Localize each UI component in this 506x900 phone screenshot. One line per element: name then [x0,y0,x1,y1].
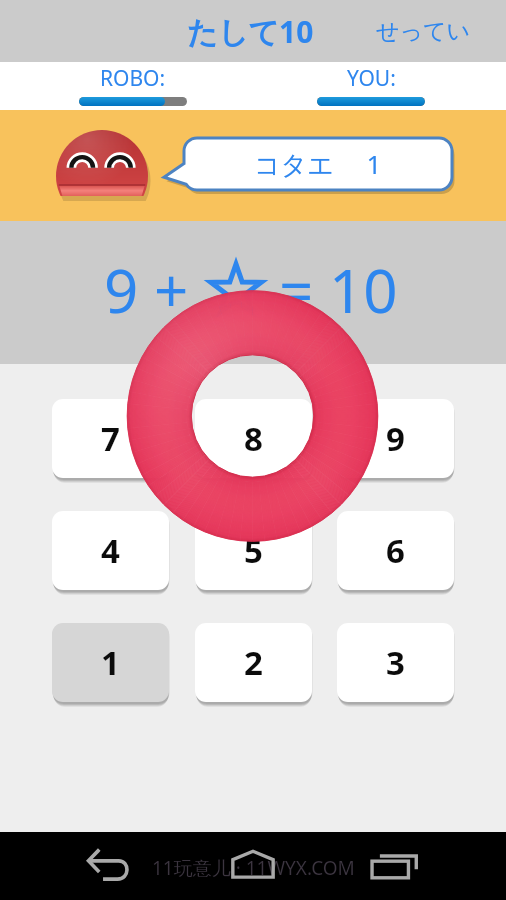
button[interactable]: 8 [195,399,312,478]
button[interactable]: 1 [52,623,169,702]
staticText: YOU: [347,64,396,93]
button[interactable]: たして10 [187,0,314,62]
staticText: 11玩意儿 · 11WYX.COM [152,855,355,881]
button[interactable]: 9 [337,399,454,478]
staticText: せってい [376,17,471,46]
button[interactable]: 7 [52,399,169,478]
button[interactable]: 4 [52,511,169,590]
staticText: 5 [244,528,263,573]
staticText: コタエ 1 [254,146,382,182]
staticText: 6 [386,528,405,573]
button[interactable]: Home [225,849,281,881]
staticText: 2 [244,640,263,685]
button[interactable]: せってい [376,0,471,62]
staticText: 8 [244,416,263,461]
staticText: 9 + [104,249,189,331]
staticText: ROBO: [100,64,166,93]
staticText: = 10 [279,249,398,331]
button[interactable]: Back [84,849,140,881]
button[interactable]: 2 [195,623,312,702]
staticText: 4 [101,528,120,573]
staticText: 1 [101,640,120,685]
staticText: 9 [386,416,405,461]
button[interactable]: 6 [337,511,454,590]
staticText: たして10 [187,11,314,52]
button[interactable]: Recent apps [367,849,423,881]
button[interactable]: 5 [195,511,312,590]
staticText: 3 [386,640,405,685]
button[interactable]: コタエ 1 [164,138,452,190]
staticText: 7 [101,416,120,461]
button[interactable]: 3 [337,623,454,702]
